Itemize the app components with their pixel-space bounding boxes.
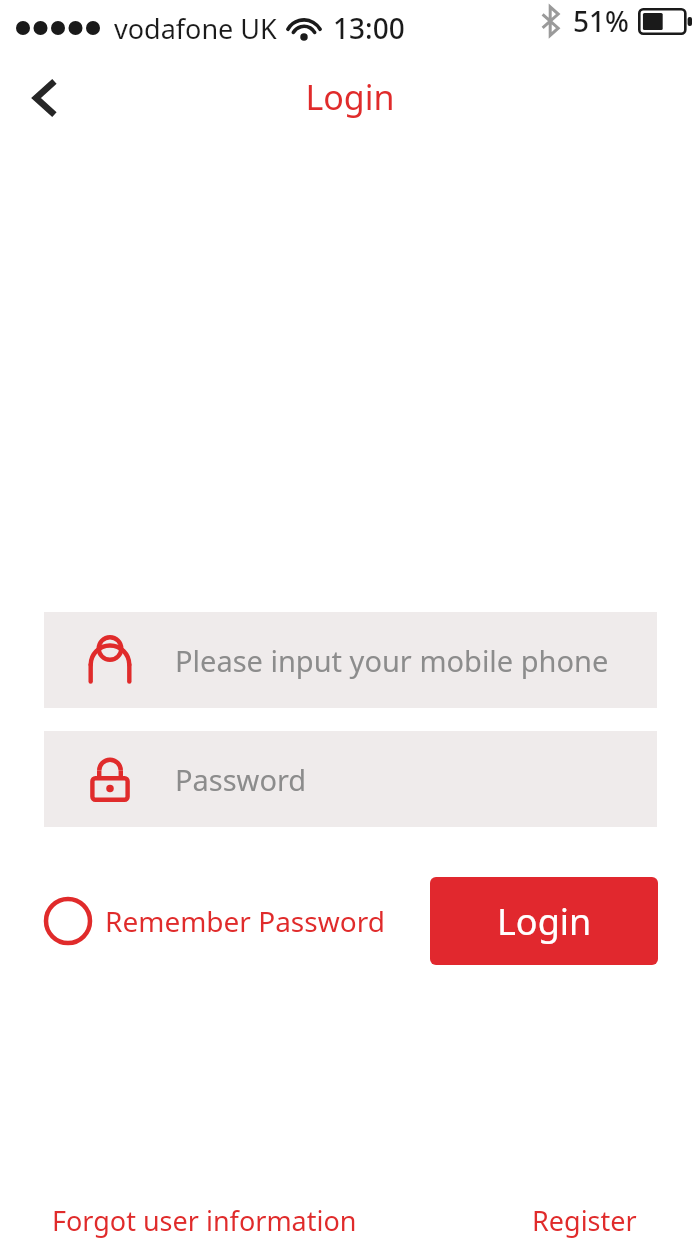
staticText: Login	[497, 897, 592, 946]
button[interactable]: Forgot user information	[52, 1196, 357, 1244]
staticText: Password	[175, 760, 307, 799]
staticText: 51%	[573, 2, 629, 40]
staticText: 13:00	[333, 9, 405, 47]
button[interactable]: Please input your mobile phone	[44, 612, 657, 708]
button[interactable]: Remember Password	[44, 877, 385, 965]
button[interactable]: Password	[44, 731, 657, 827]
button[interactable]: Back	[8, 62, 80, 134]
staticText: Login	[0, 74, 700, 120]
staticText: Please input your mobile phone	[175, 641, 609, 680]
staticText: Register	[532, 1202, 637, 1239]
button[interactable]: Register	[532, 1196, 637, 1244]
staticText: vodafone UK	[114, 10, 277, 47]
staticText: Remember Password	[105, 902, 385, 940]
staticText: Forgot user information	[52, 1202, 357, 1239]
button[interactable]: Login	[430, 877, 658, 965]
